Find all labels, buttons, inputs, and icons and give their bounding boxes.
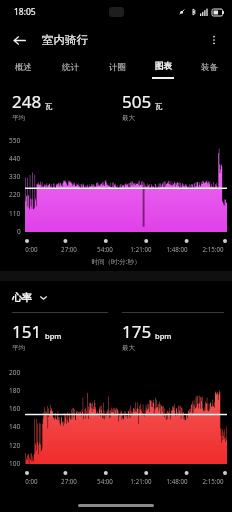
staticText: 0:00 xyxy=(25,245,38,253)
staticText: 最大 xyxy=(122,114,135,122)
staticText: 175 xyxy=(122,320,152,343)
staticText: 瓦 xyxy=(155,102,163,111)
button[interactable]: 概述 xyxy=(0,56,47,84)
staticText: 180 xyxy=(9,386,21,395)
staticText: 平均 xyxy=(12,114,25,122)
button[interactable]: 统计 xyxy=(47,56,94,84)
staticText: 54:00 xyxy=(97,245,113,253)
staticText: 2:15:00 xyxy=(202,245,224,253)
button[interactable]: 计圈 xyxy=(94,56,140,84)
staticText: 平均 xyxy=(12,344,25,352)
staticText: 1:48:00 xyxy=(166,245,188,253)
button[interactable]: 返回 xyxy=(6,27,32,53)
staticText: 100 xyxy=(9,459,21,468)
staticText: 120 xyxy=(9,441,21,450)
staticText: 0 xyxy=(17,227,21,236)
staticText: 2:15:00 xyxy=(202,477,224,485)
staticText: 0:00 xyxy=(25,477,38,485)
button[interactable]: 图表 xyxy=(140,56,186,84)
button[interactable]: 更多选项 xyxy=(202,28,226,52)
staticText: 151 xyxy=(12,320,42,343)
staticText: 计圈 xyxy=(109,62,126,73)
staticText: 200 xyxy=(9,368,21,377)
staticText: 装备 xyxy=(201,62,218,73)
staticText: 27:00 xyxy=(61,245,77,253)
staticText: 160 xyxy=(9,404,21,413)
staticText: 440 xyxy=(9,154,21,163)
staticText: 最大 xyxy=(122,344,135,352)
staticText: 心率 xyxy=(12,291,32,304)
staticText: 54:00 xyxy=(97,477,113,485)
staticText: 时间（时:分:秒） xyxy=(0,257,232,266)
button[interactable]: 心率 xyxy=(12,291,232,304)
staticText: 统计 xyxy=(62,62,79,73)
button[interactable]: 装备 xyxy=(186,56,232,84)
staticText: 概述 xyxy=(15,62,32,73)
staticText: 550 xyxy=(9,136,21,145)
staticText: 110 xyxy=(9,209,21,218)
staticText: 140 xyxy=(9,422,21,431)
staticText: 220 xyxy=(9,190,21,199)
staticText: 1:21:00 xyxy=(130,477,152,485)
staticText: bpm xyxy=(45,331,62,341)
staticText: 330 xyxy=(9,172,21,181)
staticText: 27:00 xyxy=(61,477,77,485)
staticText: 图表 xyxy=(155,61,172,72)
staticText: 248 xyxy=(12,90,42,113)
staticText: 18:05 xyxy=(14,6,36,18)
staticText: 1:21:00 xyxy=(130,245,152,253)
staticText: 瓦 xyxy=(45,102,53,111)
staticText: bpm xyxy=(155,331,172,341)
staticText: 室内骑行 xyxy=(42,33,88,47)
staticText: 1:48:00 xyxy=(166,477,188,485)
staticText: 505 xyxy=(122,90,152,113)
